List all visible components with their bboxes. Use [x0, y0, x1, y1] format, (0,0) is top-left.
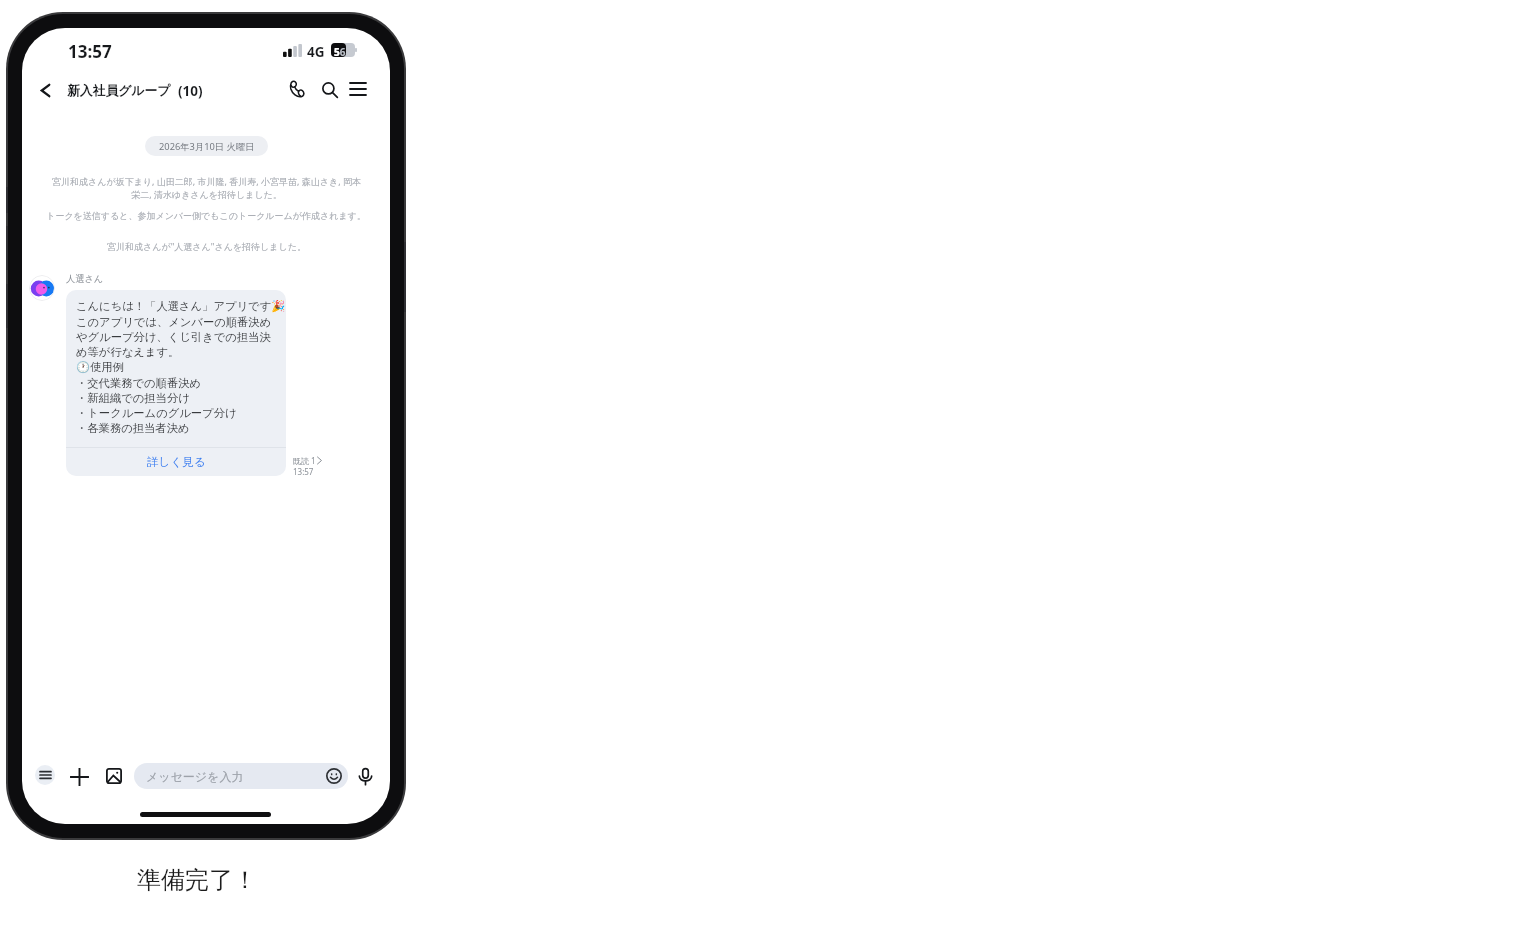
button[interactable]: 人選さん profile — [29, 275, 55, 301]
staticText: メッセージを入力 — [146, 769, 244, 784]
button[interactable]: Menu — [346, 77, 370, 101]
button[interactable]: Photo — [101, 763, 127, 789]
staticText: 宮川和成さんが坂下まり, 山田二郎, 市川隆, 香川寿, 小宮早苗, 森山さき,… — [52, 175, 361, 201]
staticText: (10) — [178, 82, 203, 100]
staticText: 既読 1 — [293, 455, 316, 466]
staticText: 2026年3月10日 火曜日 — [159, 140, 255, 153]
staticText: 準備完了！ — [137, 865, 257, 895]
staticText: 宮川和成さんが"人選さん"さんを招待しました。 — [107, 240, 306, 252]
staticText: トークを送信すると、参加メンバー側でもこのトークルームが作成されます。 — [46, 210, 366, 221]
staticText: 新入社員グループ — [67, 83, 171, 99]
button[interactable]: Search — [317, 77, 343, 103]
staticText: 56 — [334, 45, 346, 59]
staticText: 4G — [307, 43, 325, 61]
staticText: 56 — [334, 45, 345, 56]
staticText: 13:57 — [68, 40, 112, 63]
button[interactable]: 新入社員グループ — [65, 78, 207, 104]
button[interactable]: Call — [284, 76, 310, 102]
button[interactable]: Back — [32, 77, 58, 103]
staticText: 人選さん — [66, 273, 104, 285]
button[interactable]: Add — [66, 764, 92, 790]
button[interactable]: Voice message — [352, 763, 378, 789]
staticText: 13:57 — [293, 466, 314, 477]
button[interactable]: More options — [35, 765, 55, 785]
button[interactable]: メッセージを入力 — [134, 763, 348, 789]
staticText: こんにちは！「人選さん」アプリです🎉 このアプリでは、メンバーの順番決め やグル… — [76, 299, 286, 435]
staticText: 詳しく見る — [147, 455, 206, 470]
button[interactable]: 詳しく見る — [66, 448, 286, 476]
